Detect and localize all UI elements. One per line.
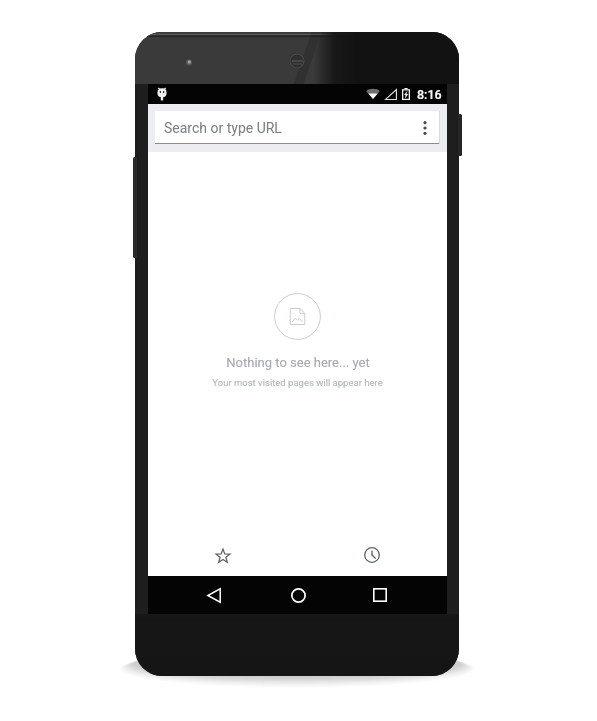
button[interactable]: Bookmarks xyxy=(148,534,297,576)
staticText: Nothing to see here... yet xyxy=(226,355,370,370)
staticText: Search or type URL xyxy=(164,120,282,136)
button[interactable]: Recents xyxy=(356,576,404,614)
button[interactable]: Home xyxy=(274,576,322,614)
staticText: Your most visited pages will appear here xyxy=(212,377,383,388)
button[interactable]: More options xyxy=(410,113,440,143)
button[interactable]: Search or type URL xyxy=(155,111,440,144)
button[interactable]: History xyxy=(297,534,447,576)
staticText: 8:16 xyxy=(417,87,442,102)
button[interactable]: Back xyxy=(190,576,238,614)
